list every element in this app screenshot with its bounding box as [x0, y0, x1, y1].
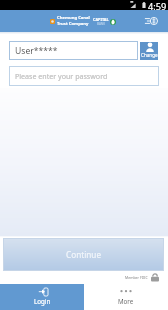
button[interactable]: Transfer money	[136, 10, 168, 32]
button[interactable]: Continue	[3, 238, 164, 271]
button[interactable]: Login	[0, 284, 84, 310]
button[interactable]: Change	[140, 42, 158, 60]
staticText: User*****	[15, 45, 58, 57]
staticText: BANK	[97, 22, 106, 26]
staticText: CAPITAL	[93, 17, 109, 22]
staticText: Trust Company	[57, 21, 89, 27]
staticText: Member FDIC	[125, 275, 148, 280]
staticText: 4:59	[148, 0, 167, 10]
staticText: Login	[34, 297, 51, 305]
staticText: Please enter your password	[15, 71, 108, 81]
staticText: Change	[141, 52, 158, 58]
button[interactable]: More	[84, 284, 168, 310]
staticText: Continue	[66, 249, 101, 260]
button[interactable]: Please enter your password	[9, 66, 159, 86]
staticText: More	[118, 297, 134, 305]
button[interactable]: User*****	[9, 41, 138, 60]
staticText: Chemung Canal	[57, 15, 90, 21]
